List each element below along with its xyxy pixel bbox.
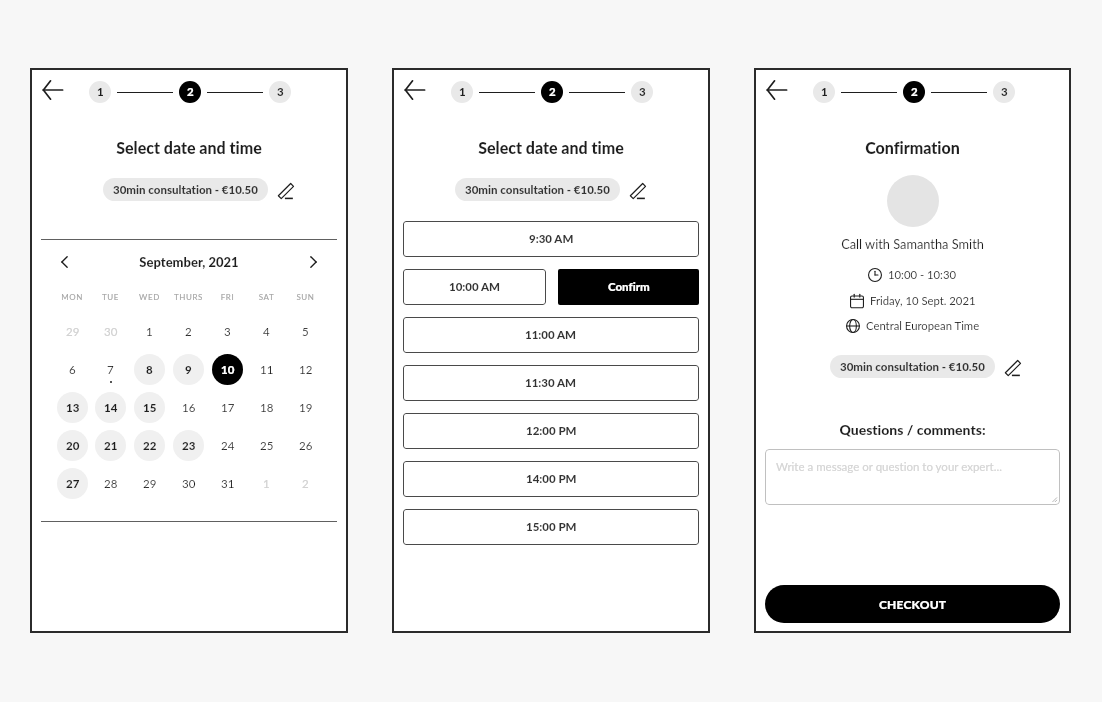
staticText: 29 (143, 477, 157, 491)
button[interactable]: 31 (212, 468, 243, 499)
button[interactable]: Edit (275, 181, 295, 201)
staticText: 19 (299, 401, 313, 415)
staticText: 30min consultation - €10.50 (840, 360, 985, 374)
staticText: 10 (221, 363, 235, 377)
button[interactable]: 10 (212, 354, 243, 385)
staticText: Central European Time (866, 319, 980, 333)
button[interactable]: 25 (251, 430, 282, 461)
button[interactable]: 1 (134, 316, 165, 347)
staticText: FRI (208, 292, 247, 302)
button[interactable]: Next month (302, 251, 324, 273)
button[interactable]: Write a message or question to your expe… (765, 449, 1060, 505)
button[interactable]: 1 (89, 81, 111, 103)
staticText: 29 (66, 325, 80, 339)
button[interactable]: 19 (290, 392, 321, 423)
button[interactable]: 22 (134, 430, 165, 461)
staticText: 13 (66, 401, 80, 415)
button[interactable]: 21 (95, 430, 126, 461)
button[interactable]: 11:00 AM (403, 317, 699, 353)
staticText: 3 (277, 85, 284, 99)
staticText: 15:00 PM (526, 520, 577, 534)
button[interactable]: 4 (251, 316, 282, 347)
button[interactable]: 3 (993, 81, 1015, 103)
button[interactable]: Edit (1002, 358, 1022, 378)
button[interactable]: 26 (290, 430, 321, 461)
button[interactable]: CHECKOUT (765, 585, 1060, 623)
button[interactable]: 16 (173, 392, 204, 423)
button[interactable]: 30min consultation - €10.50 (103, 178, 268, 201)
staticText: SUN (286, 292, 325, 302)
button[interactable]: Back (38, 75, 68, 105)
staticText: 11:00 AM (525, 328, 577, 342)
staticText: 10:00 AM (449, 280, 501, 294)
button[interactable]: Previous month (54, 251, 76, 273)
staticText: 10:00 - 10:30 (888, 268, 957, 282)
button[interactable]: 15:00 PM (403, 509, 699, 545)
staticText: Confirm (608, 280, 650, 294)
button[interactable]: 9:30 AM (403, 221, 699, 257)
staticText: 30 (182, 477, 196, 491)
button[interactable]: 5 (290, 316, 321, 347)
button[interactable]: Back (400, 75, 430, 105)
button[interactable]: 2 (541, 81, 563, 103)
staticText: Select date and time (392, 138, 710, 157)
staticText: 1 (97, 85, 104, 99)
button[interactable]: 30min consultation - €10.50 (455, 178, 620, 201)
button[interactable]: 14 (95, 392, 126, 423)
staticText: THURS (169, 292, 208, 302)
button[interactable]: 17 (212, 392, 243, 423)
staticText: 30 (104, 325, 118, 339)
button[interactable]: 30 (95, 316, 126, 347)
button[interactable]: 30min consultation - €10.50 (830, 355, 995, 378)
staticText: 6 (69, 363, 76, 377)
button[interactable]: Back (762, 75, 792, 105)
staticText: 3 (639, 85, 646, 99)
button[interactable]: 1 (451, 81, 473, 103)
button[interactable]: Edit (627, 181, 647, 201)
button[interactable]: 7 (95, 354, 126, 385)
button[interactable]: 3 (212, 316, 243, 347)
button[interactable]: 28 (95, 468, 126, 499)
staticText: Select date and time (30, 138, 348, 157)
staticText: 2 (187, 85, 194, 99)
button[interactable]: 11 (251, 354, 282, 385)
button[interactable]: 14:00 PM (403, 461, 699, 497)
button[interactable]: 2 (903, 81, 925, 103)
button[interactable]: 10:00 AM (403, 269, 546, 305)
button[interactable]: 27 (57, 468, 88, 499)
button[interactable]: 2 (290, 468, 321, 499)
button[interactable]: 6 (57, 354, 88, 385)
button[interactable]: 29 (134, 468, 165, 499)
button[interactable]: 2 (173, 316, 204, 347)
button[interactable]: 24 (212, 430, 243, 461)
button[interactable]: 23 (173, 430, 204, 461)
staticText: 1 (263, 477, 270, 491)
staticText: 4 (263, 325, 270, 339)
button[interactable]: 12:00 PM (403, 413, 699, 449)
staticText: 2 (911, 85, 918, 99)
button[interactable]: 18 (251, 392, 282, 423)
button[interactable]: 30 (173, 468, 204, 499)
button[interactable]: 8 (134, 354, 165, 385)
button[interactable]: 11:30 AM (403, 365, 699, 401)
button[interactable]: 12 (290, 354, 321, 385)
button[interactable]: Confirm (558, 269, 699, 305)
button[interactable]: 29 (57, 316, 88, 347)
staticText: September, 2021 (76, 254, 302, 270)
staticText: 30min consultation - €10.50 (465, 183, 610, 197)
staticText: 2 (549, 85, 556, 99)
button[interactable]: 3 (269, 81, 291, 103)
button[interactable]: 1 (251, 468, 282, 499)
staticText: Write a message or question to your expe… (776, 460, 1002, 474)
button[interactable]: 2 (179, 81, 201, 103)
button[interactable]: 3 (631, 81, 653, 103)
button[interactable]: 9 (173, 354, 204, 385)
staticText: 16 (182, 401, 196, 415)
staticText: Call with Samantha Smith (754, 236, 1071, 251)
staticText: 23 (182, 439, 196, 453)
button[interactable]: 1 (813, 81, 835, 103)
button[interactable]: 13 (57, 392, 88, 423)
button[interactable]: 20 (57, 430, 88, 461)
button[interactable]: 15 (134, 392, 165, 423)
staticText: 8 (146, 363, 153, 377)
